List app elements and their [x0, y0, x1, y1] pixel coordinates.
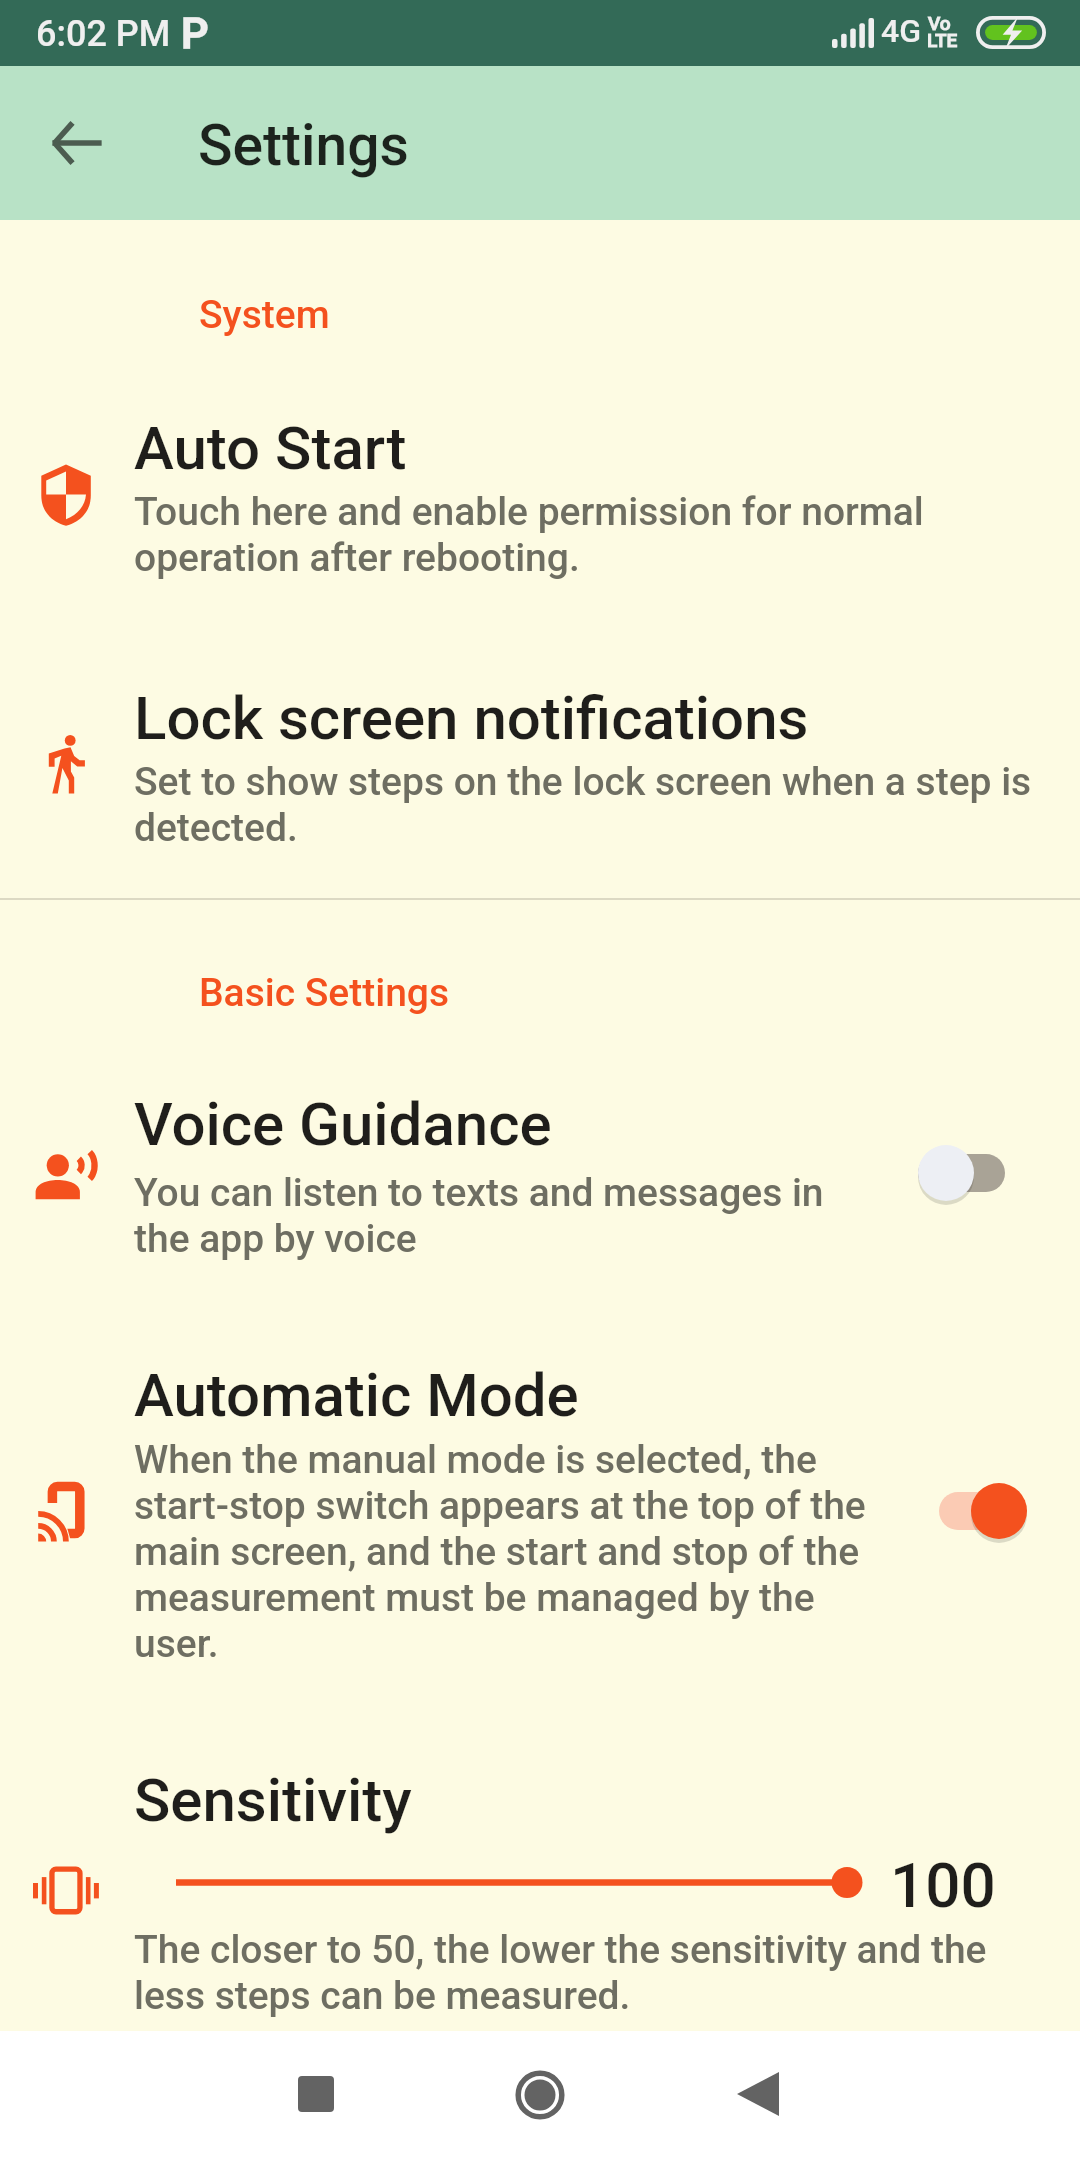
staticText: You can listen to texts and messages in … — [134, 1170, 879, 1262]
staticText: Lock screen notifications — [134, 684, 809, 754]
staticText: Automatic Mode — [134, 1361, 579, 1431]
staticText: System — [199, 292, 330, 338]
staticText: Touch here and enable permission for nor… — [134, 489, 1054, 581]
staticText: P — [181, 8, 209, 58]
staticText: When the manual mode is selected, the st… — [134, 1437, 884, 1667]
staticText: 6:02 PM — [36, 13, 171, 55]
button[interactable]: Recents — [268, 2046, 364, 2142]
staticText: Sensitivity — [134, 1766, 412, 1836]
staticText: 4G — [881, 12, 921, 50]
button[interactable]: Back — [710, 2046, 806, 2142]
button[interactable]: Lock screen notifications — [0, 666, 1080, 856]
button[interactable]: Auto Start — [0, 396, 1080, 586]
button[interactable]: Automatic Mode — [0, 1343, 1080, 1673]
staticText: Basic Settings — [199, 970, 450, 1016]
staticText: Settings — [198, 112, 409, 179]
staticText: Set to show steps on the lock screen whe… — [134, 759, 1054, 851]
staticText: Vo — [928, 12, 951, 34]
staticText: Auto Start — [134, 414, 407, 484]
button[interactable]: Sensitivity slider — [140, 1847, 900, 1917]
button[interactable]: Voice Guidance — [0, 1072, 1080, 1267]
staticText: Voice Guidance — [134, 1090, 552, 1160]
button[interactable]: Home — [492, 2047, 588, 2143]
staticText: 100 — [890, 1849, 996, 1922]
button[interactable]: Automatic Mode toggle — [919, 1467, 1049, 1555]
button[interactable]: Voice Guidance toggle — [898, 1129, 1028, 1217]
staticText: The closer to 50, the lower the sensitiv… — [134, 1927, 1014, 2019]
button[interactable]: Back — [25, 91, 129, 195]
staticText: LTE — [927, 29, 958, 51]
